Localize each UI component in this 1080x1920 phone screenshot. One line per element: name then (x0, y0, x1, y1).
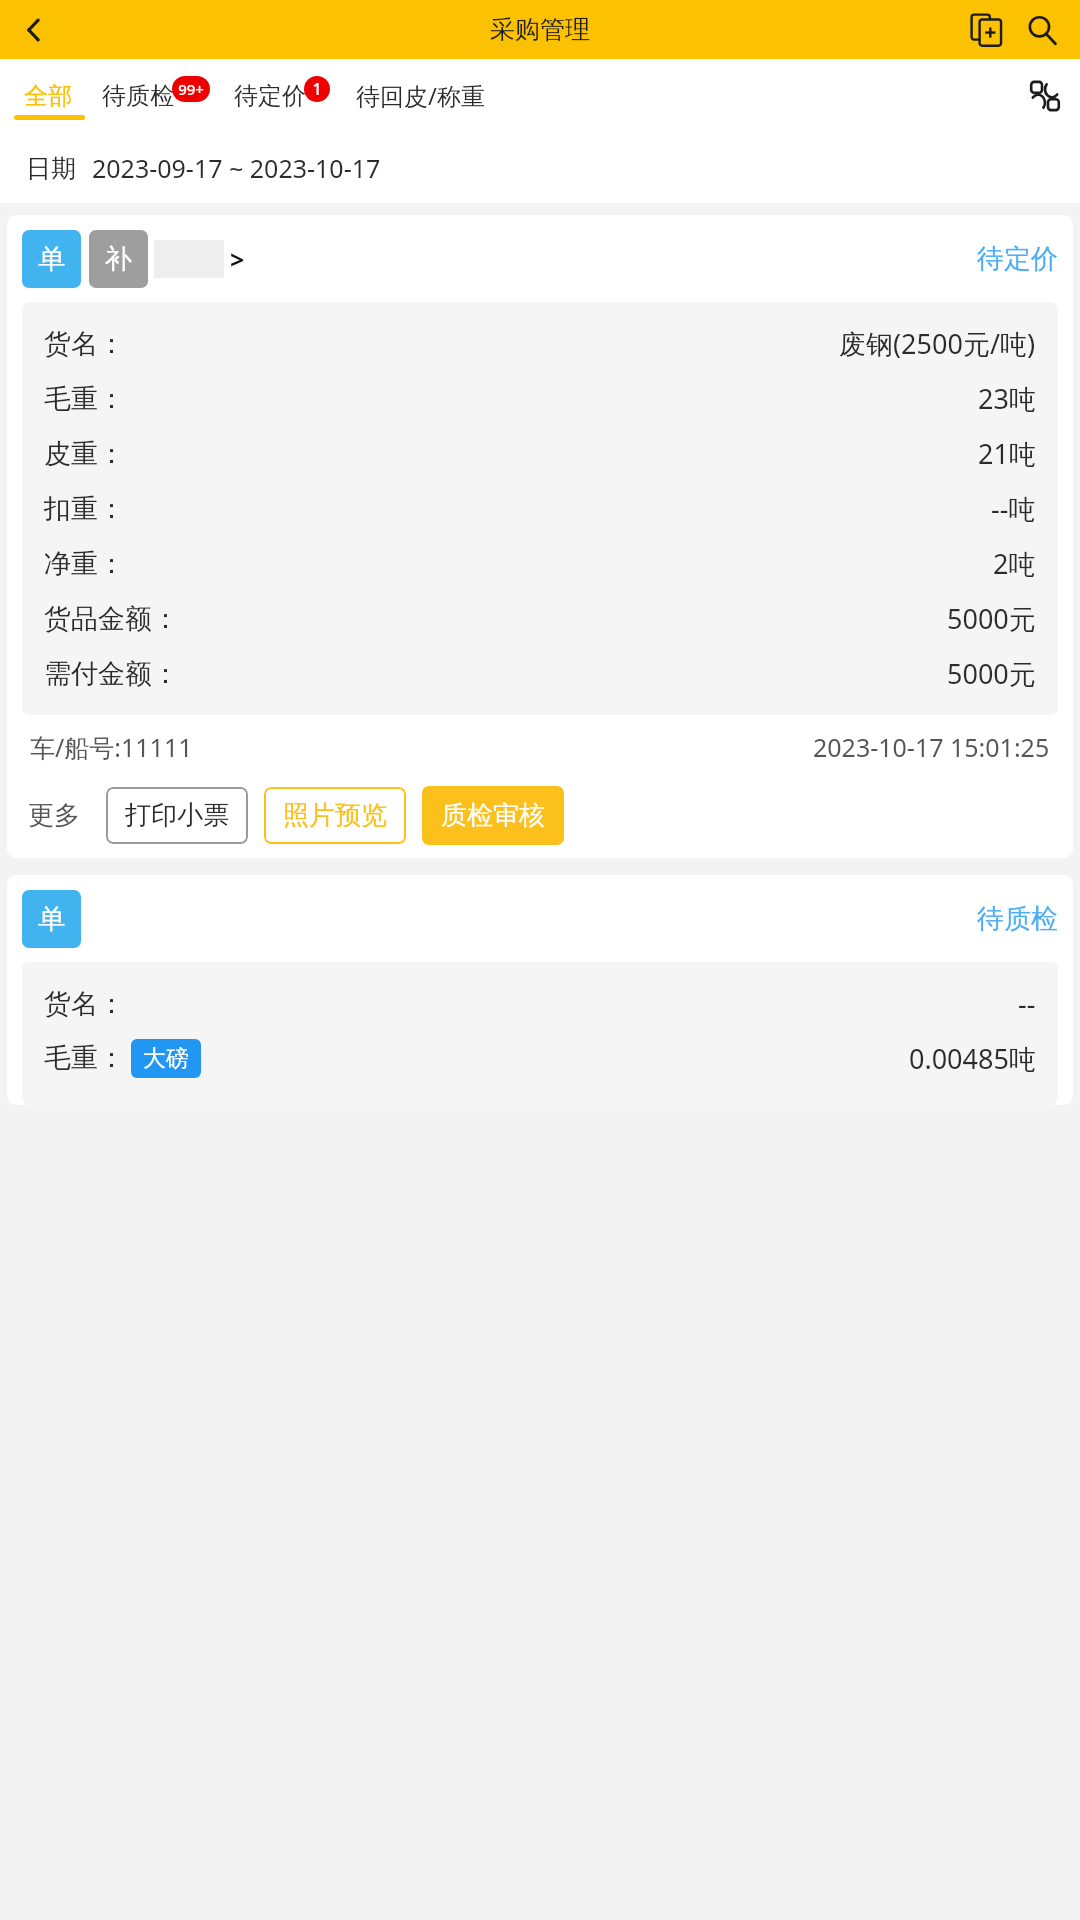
staticText: 2023-10-17 15:01:25 (813, 730, 1050, 764)
staticText: 扣重： (44, 492, 125, 526)
staticText: 货名： (44, 327, 125, 361)
staticText: 车/船号:11111 (30, 730, 193, 764)
button[interactable]: 打印小票 (106, 787, 248, 844)
staticText: 全部 (24, 81, 72, 111)
staticText: 皮重： (44, 437, 125, 471)
staticText: 货品金额： (44, 602, 179, 636)
staticText: 待质检 (977, 902, 1058, 936)
staticText: -- (1018, 985, 1036, 1022)
button[interactable]: 照片预览 (264, 787, 406, 844)
staticText: 打印小票 (125, 799, 229, 832)
staticText: 1 (312, 78, 322, 100)
staticText: --吨 (991, 490, 1036, 527)
staticText: 照片预览 (283, 799, 387, 832)
staticText: 质检审核 (441, 799, 545, 832)
staticText: 更多 (28, 799, 80, 832)
button[interactable]: 单 (7, 875, 1073, 1105)
button[interactable]: 单 (7, 215, 1073, 858)
staticText: 毛重： (44, 1041, 125, 1075)
staticText: 待回皮/称重 (356, 79, 485, 112)
button[interactable]: 更多 (22, 799, 86, 832)
staticText: 5000元 (947, 655, 1036, 692)
staticText: > (230, 242, 245, 276)
button[interactable]: Back (8, 4, 60, 56)
staticText: 待定价 (234, 81, 306, 111)
staticText: 日期 (26, 153, 76, 184)
staticText: 货名： (44, 987, 125, 1021)
staticText: 0.00485吨 (909, 1040, 1036, 1077)
staticText: 单 (38, 902, 65, 936)
button[interactable]: 待质检 (102, 81, 212, 111)
staticText: 补 (105, 242, 132, 276)
staticText: 5000元 (947, 600, 1036, 637)
staticText: 21吨 (978, 435, 1036, 472)
staticText: 采购管理 (490, 14, 590, 45)
staticText: 需付金额： (44, 657, 179, 691)
staticText: 大磅 (143, 1044, 189, 1073)
staticText: 99+ (178, 79, 204, 99)
staticText: 净重： (44, 547, 125, 581)
button[interactable]: New order (958, 2, 1014, 58)
button[interactable]: Switch layout (1022, 73, 1068, 119)
button[interactable]: 全部 (18, 81, 78, 111)
staticText: 废钢(2500元/吨) (839, 325, 1036, 362)
staticText: 待定价 (977, 242, 1058, 276)
button[interactable]: 待回皮/称重 (354, 79, 487, 112)
button[interactable]: 待定价 (234, 81, 332, 111)
button[interactable]: 质检审核 (422, 786, 564, 845)
staticText: 2吨 (993, 545, 1036, 582)
staticText: 待质检 (102, 81, 174, 111)
staticText: 23吨 (978, 380, 1036, 417)
staticText: 2023-09-17 ~ 2023-10-17 (92, 151, 381, 185)
staticText: 毛重： (44, 382, 125, 416)
button[interactable]: Search (1014, 2, 1070, 58)
button[interactable]: 日期 (26, 151, 381, 185)
staticText: 单 (38, 242, 65, 276)
